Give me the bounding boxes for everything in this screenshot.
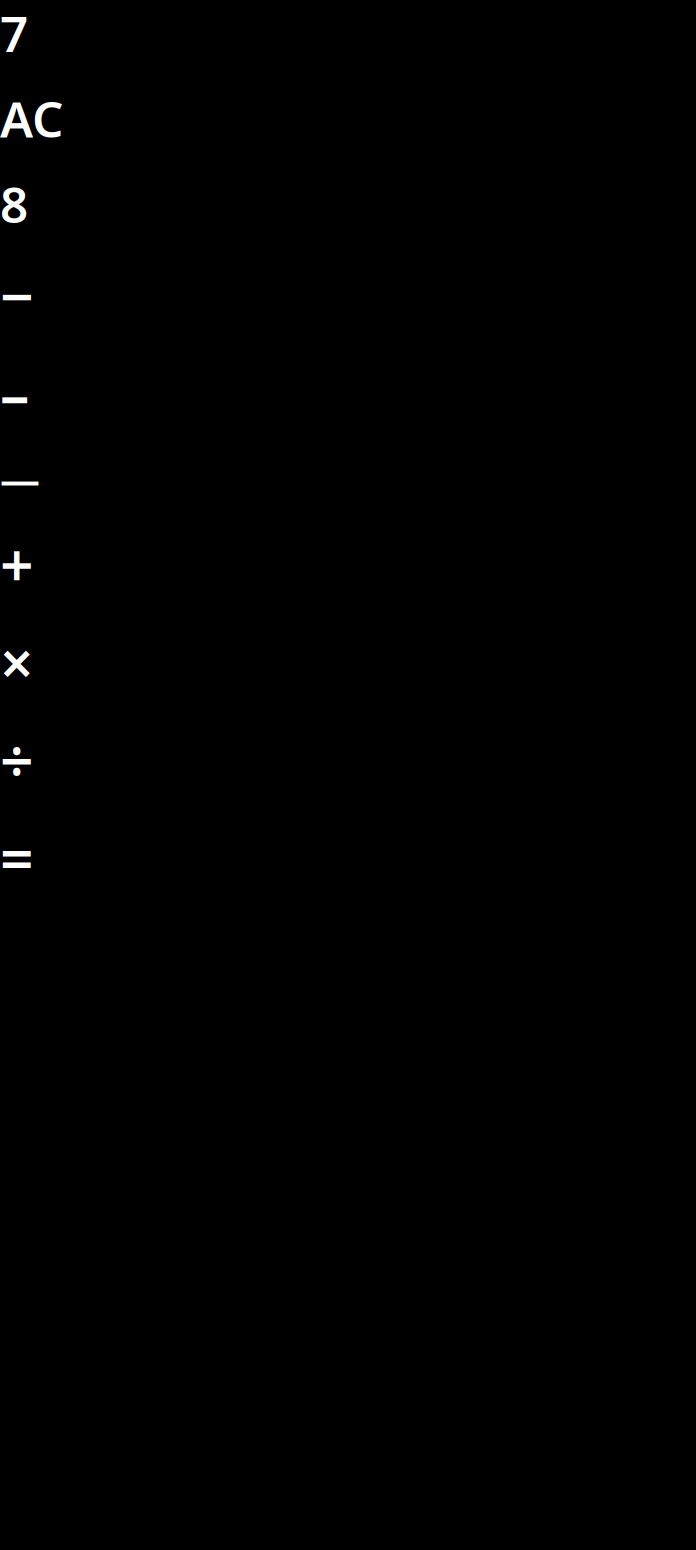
staticText: = (0, 819, 34, 897)
staticText: AC (0, 85, 63, 151)
staticText: × (0, 623, 34, 701)
staticText: − (0, 256, 34, 334)
staticText: — (0, 452, 40, 505)
staticText: ÷ (0, 721, 34, 799)
staticText: – (0, 354, 29, 432)
staticText: 8 (0, 171, 28, 236)
staticText: 7 (0, 0, 28, 65)
staticText: + (0, 525, 34, 603)
